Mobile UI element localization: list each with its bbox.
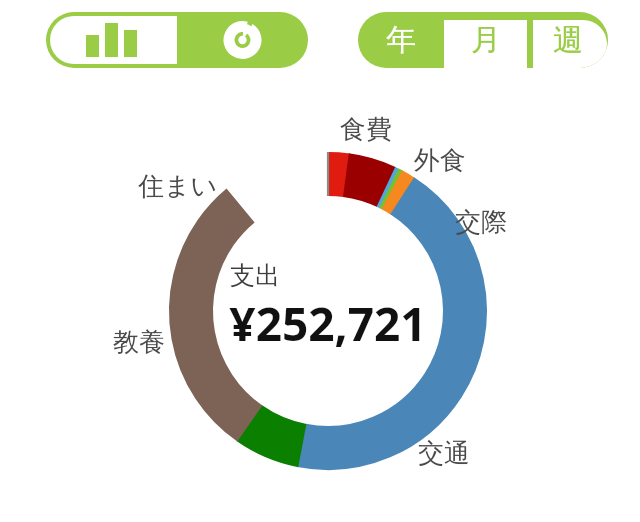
staticText: 外食 <box>414 144 466 177</box>
button[interactable]: 週 <box>528 12 608 68</box>
staticText: 年 <box>386 21 416 59</box>
staticText: ¥252,721 <box>229 292 427 348</box>
staticText: 食費 <box>340 113 392 146</box>
button[interactable]: Pie chart view <box>177 12 308 68</box>
button[interactable]: 月 <box>443 12 528 68</box>
staticText: 交際 <box>455 206 507 239</box>
button[interactable]: 年 <box>358 12 443 68</box>
staticText: 教養 <box>113 326 165 359</box>
staticText: 交通 <box>418 437 470 470</box>
staticText: 支出 <box>230 260 280 291</box>
staticText: 週 <box>553 21 583 59</box>
staticText: 住まい <box>138 170 218 203</box>
staticText: 月 <box>471 21 501 59</box>
button[interactable]: Bar chart view <box>46 12 177 68</box>
